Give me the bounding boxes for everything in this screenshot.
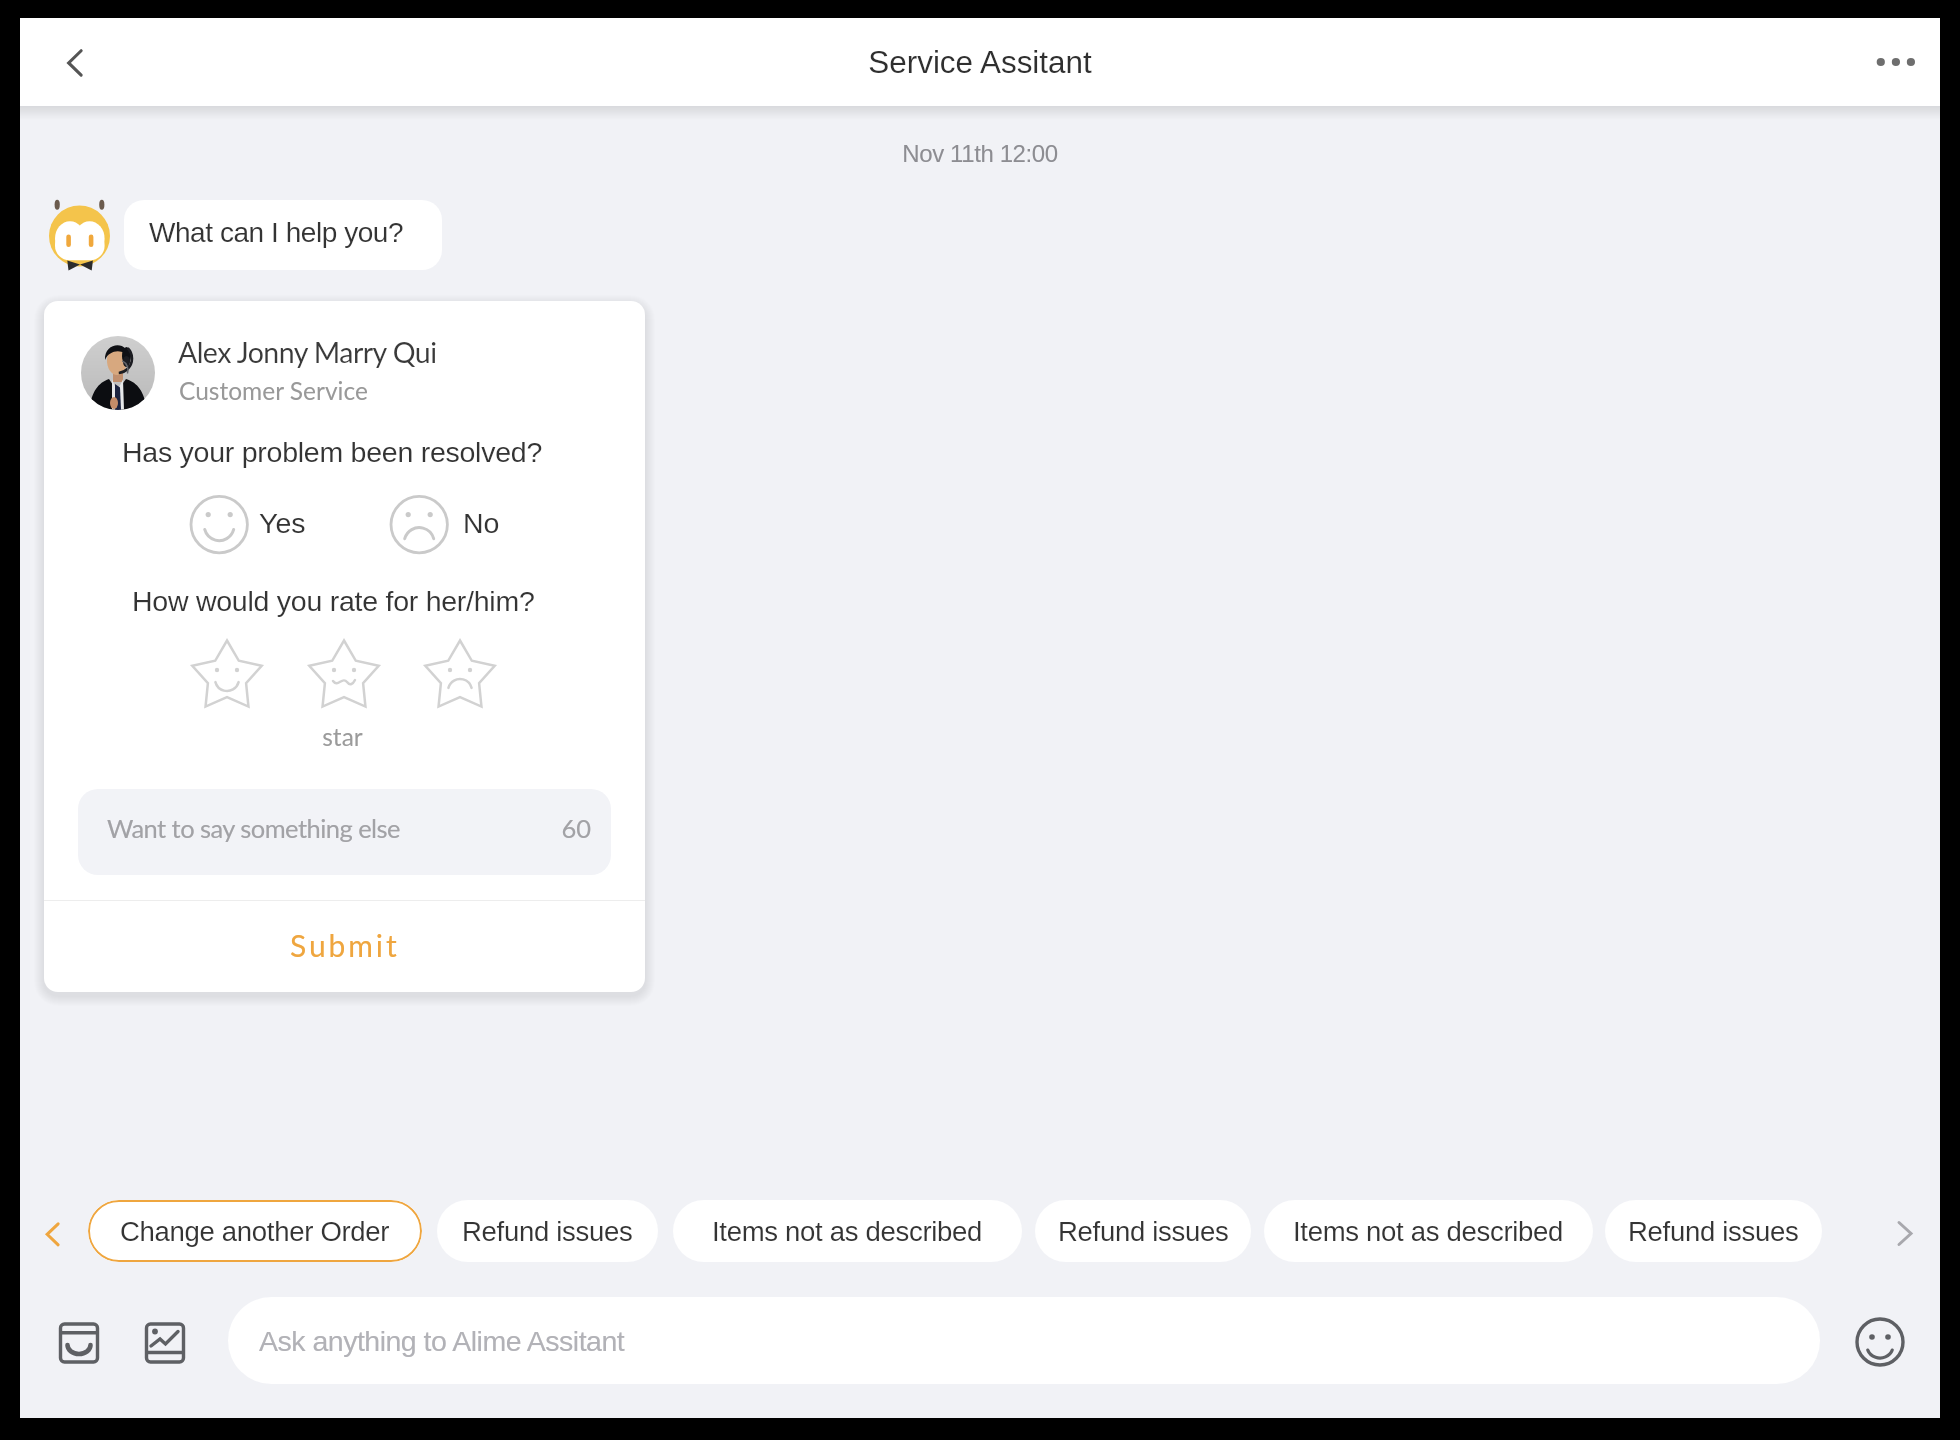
staticText: Refund issues: [1628, 1216, 1799, 1247]
button[interactable]: Rate 2 star: [299, 632, 389, 722]
staticText: Items not as described: [712, 1216, 983, 1247]
staticText: Nov 11th 12:00: [902, 140, 1058, 167]
staticText: Submit: [290, 927, 400, 963]
button[interactable]: Previous suggestions: [25, 1203, 85, 1263]
staticText: Refund issues: [462, 1216, 633, 1247]
button[interactable]: Emoji: [1850, 1312, 1910, 1372]
staticText: How would you rate for her/him?: [132, 585, 535, 617]
staticText: Want to say something else: [107, 813, 400, 844]
staticText: What can I help you?: [149, 217, 404, 248]
button[interactable]: Photo: [136, 1313, 194, 1371]
staticText: Refund issues: [1058, 1216, 1229, 1247]
button[interactable]: Refund issues: [437, 1200, 658, 1262]
staticText: 60: [561, 813, 591, 844]
button[interactable]: Rate 3 star: [415, 632, 505, 722]
staticText: No: [463, 507, 500, 539]
button[interactable]: Submit: [44, 899, 645, 990]
button[interactable]: More options: [1856, 22, 1936, 102]
button[interactable]: Shop: [50, 1313, 108, 1371]
staticText: Customer Service: [179, 376, 368, 405]
button[interactable]: Refund issues: [1605, 1200, 1822, 1262]
staticText: Ask anything to Alime Assitant: [259, 1325, 625, 1357]
button[interactable]: [124, 200, 442, 270]
button[interactable]: [228, 1297, 1820, 1384]
button[interactable]: [78, 789, 611, 875]
staticText: Yes: [259, 507, 306, 539]
staticText: Items not as described: [1293, 1216, 1564, 1247]
staticText: Change another Order: [120, 1216, 390, 1247]
button[interactable]: Back: [34, 22, 114, 102]
staticText: Has your problem been resolved?: [122, 436, 542, 468]
staticText: Service Assitant: [868, 45, 1092, 80]
button[interactable]: [391, 496, 541, 554]
button[interactable]: Items not as described: [673, 1200, 1022, 1262]
staticText: star: [322, 722, 363, 751]
button[interactable]: Rate 1 star: [182, 632, 272, 722]
button[interactable]: More suggestions: [1875, 1203, 1935, 1263]
staticText: Alex Jonny Marry Qui: [178, 335, 437, 369]
button[interactable]: Items not as described: [1264, 1200, 1593, 1262]
button[interactable]: [191, 496, 341, 554]
button[interactable]: Refund issues: [1035, 1200, 1251, 1262]
button[interactable]: Change another Order: [88, 1200, 422, 1262]
